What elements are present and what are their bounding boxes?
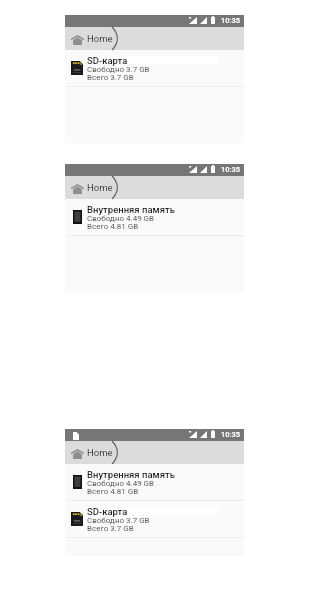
staticText: Свободно 3.7 GB xyxy=(87,516,150,525)
staticText: SD-карта xyxy=(87,55,128,66)
staticText: Свободно 4.49 GB xyxy=(87,479,155,488)
button[interactable]: Внутренняя память xyxy=(65,464,244,501)
staticText: Внутренняя память xyxy=(87,469,175,480)
button[interactable]: Home xyxy=(65,27,244,50)
staticText: 10:35 xyxy=(221,165,241,174)
staticText: Всего 3.7 GB xyxy=(87,73,134,82)
staticText: Свободно 3.7 GB xyxy=(87,65,150,74)
button[interactable]: Home xyxy=(65,176,244,199)
staticText: Home xyxy=(87,182,113,193)
staticText: Home xyxy=(87,447,113,458)
staticText: SD-карта xyxy=(87,506,128,517)
button[interactable]: Внутренняя память xyxy=(65,199,244,236)
button[interactable]: Home xyxy=(65,441,244,464)
staticText: Всего 3.7 GB xyxy=(87,524,134,533)
button[interactable]: SD-карта xyxy=(65,50,244,87)
staticText: Всего 4.81 GB xyxy=(87,222,139,231)
staticText: Всего 4.81 GB xyxy=(87,487,139,496)
staticText: 10:35 xyxy=(221,16,241,25)
staticText: Свободно 4.49 GB xyxy=(87,214,155,223)
button[interactable]: SD-карта xyxy=(65,501,244,538)
staticText: Внутренняя память xyxy=(87,204,175,215)
staticText: Home xyxy=(87,33,113,44)
staticText: 10:35 xyxy=(221,430,241,439)
